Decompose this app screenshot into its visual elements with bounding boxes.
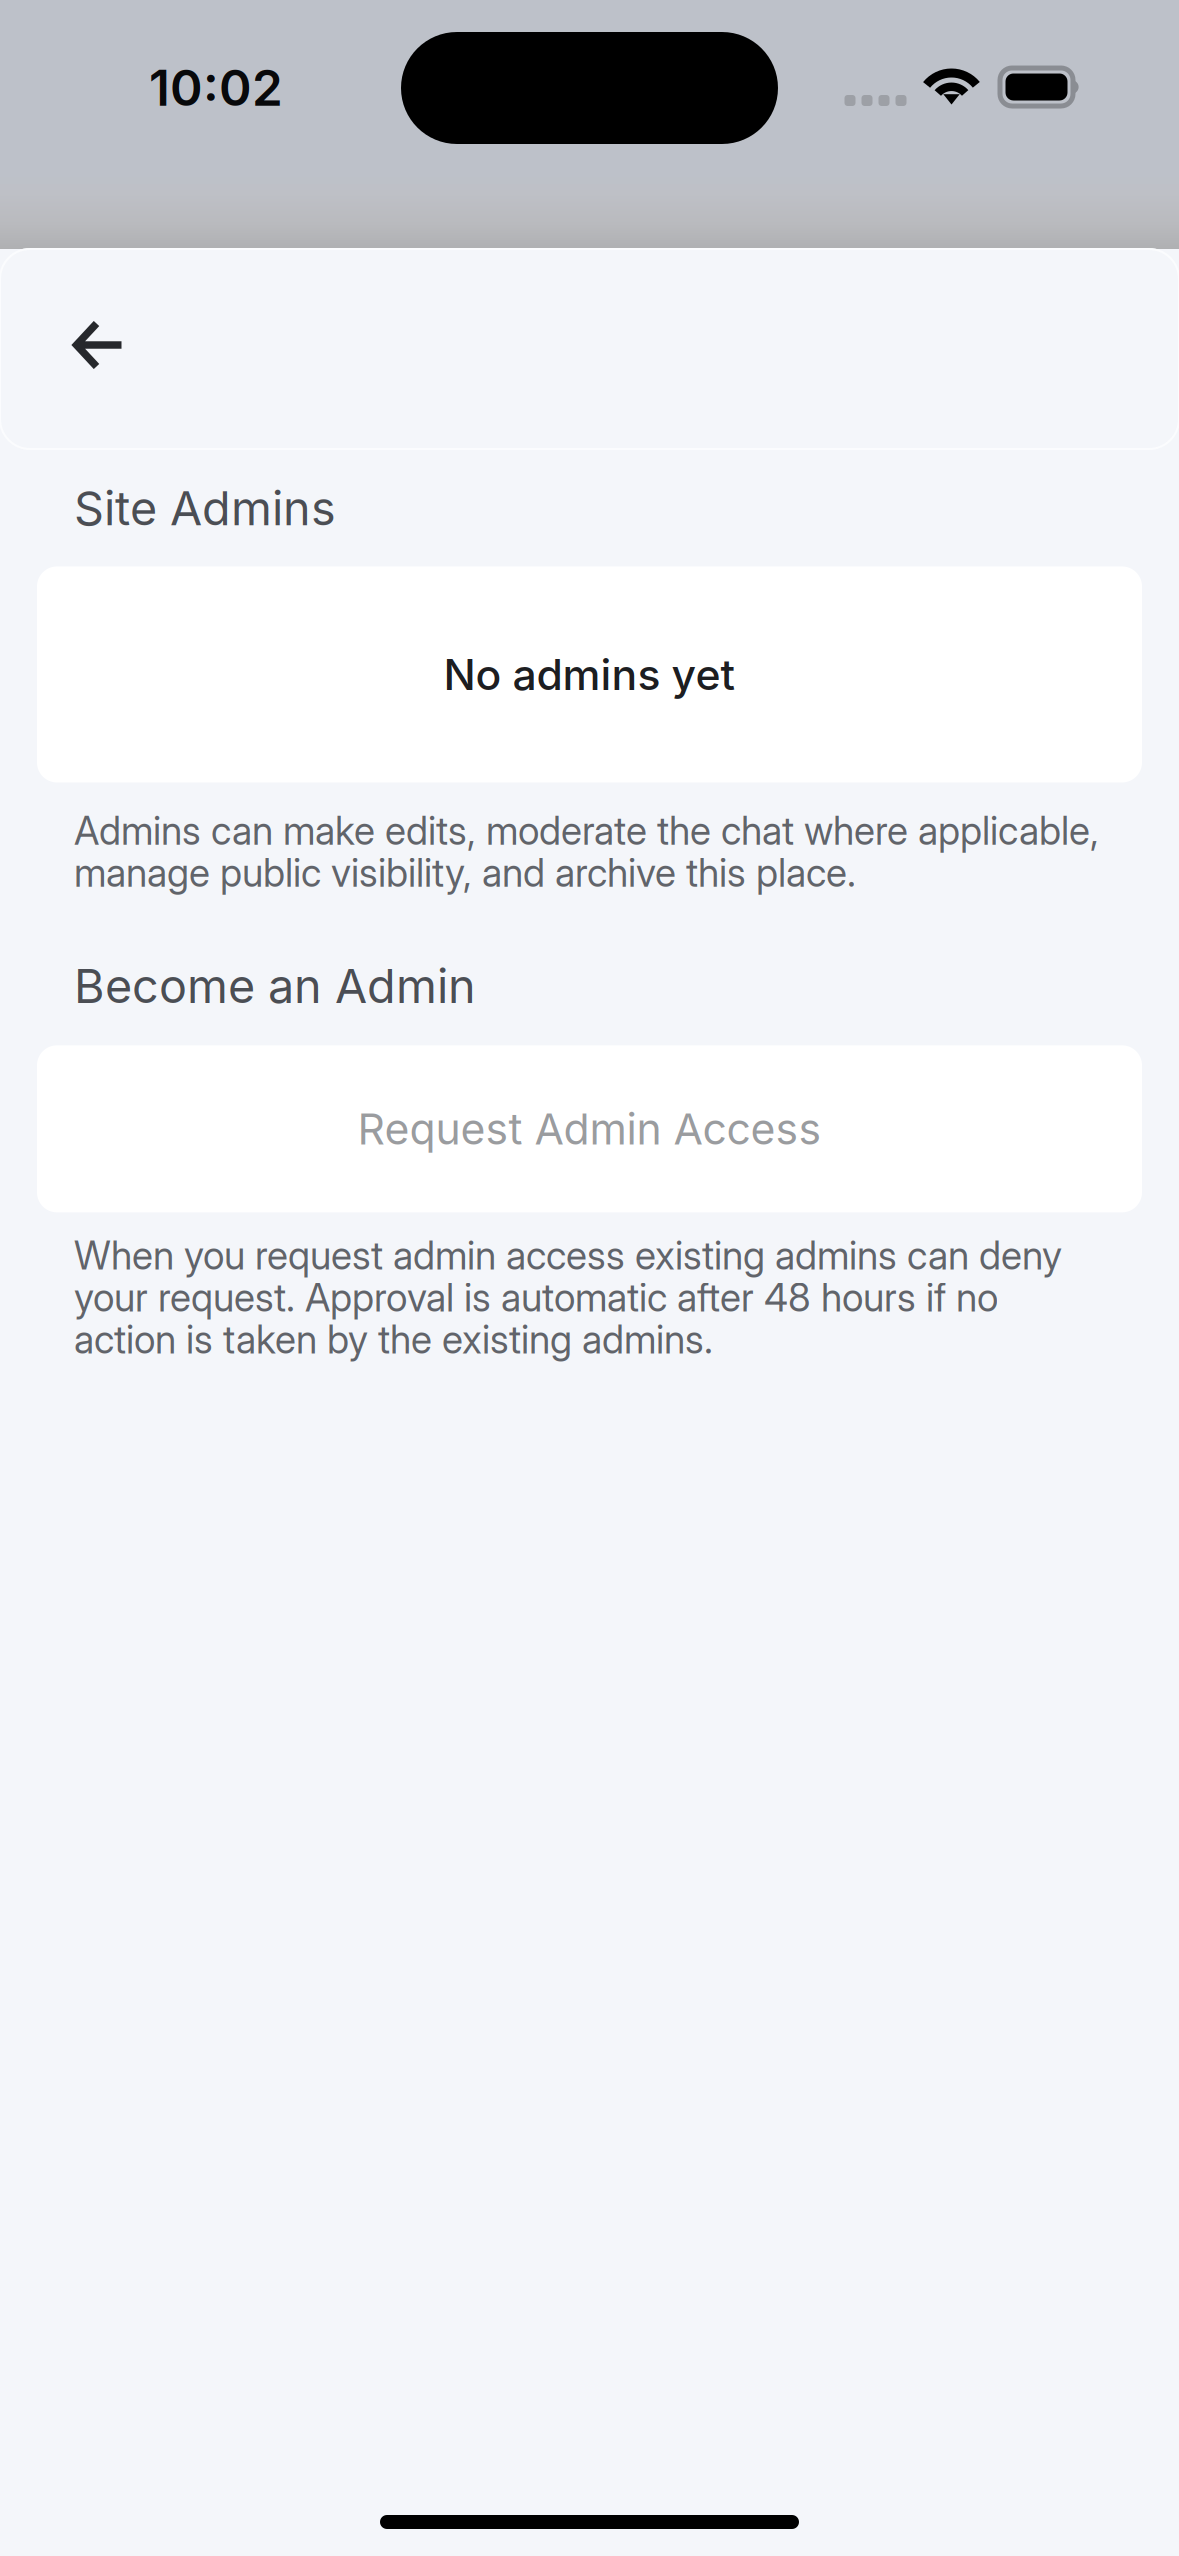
button[interactable]: Back <box>0 299 161 391</box>
staticText: Become an Admin <box>74 958 476 1014</box>
button[interactable]: Request Admin Access <box>0 1045 1179 1212</box>
staticText: Site Admins <box>74 480 336 536</box>
staticText: No admins yet <box>443 649 735 700</box>
staticText: Request Admin Access <box>357 1103 821 1155</box>
staticText: Admins can make edits, moderate the chat… <box>74 807 1099 896</box>
staticText: When you request admin access existing a… <box>74 1232 1062 1363</box>
staticText: 10:02 <box>149 58 283 118</box>
